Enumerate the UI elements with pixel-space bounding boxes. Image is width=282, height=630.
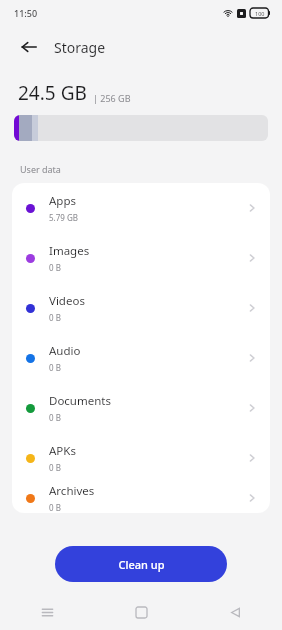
staticText: Storage (54, 38, 106, 57)
button[interactable]: Recents (30, 595, 64, 629)
staticText: 5.79 GB (49, 212, 78, 223)
staticText: 0 B (49, 262, 61, 273)
staticText: Documents (49, 393, 111, 409)
button[interactable]: Back (218, 595, 252, 629)
button[interactable]: Audio (12, 333, 270, 383)
button[interactable]: Back (14, 32, 44, 62)
staticText: Apps (49, 193, 77, 209)
staticText: User data (20, 163, 61, 175)
staticText: Clean up (118, 557, 165, 572)
button[interactable]: Archives (12, 483, 270, 513)
staticText: Images (49, 243, 90, 259)
staticText: 100 (255, 10, 265, 17)
staticText: Archives (49, 483, 95, 499)
staticText: Audio (49, 343, 81, 359)
staticText: 0 B (49, 312, 61, 323)
staticText: 24.5 GB (18, 80, 87, 106)
button[interactable]: APKs (12, 433, 270, 483)
staticText: Videos (49, 293, 85, 309)
staticText: | 256 GB (93, 92, 131, 104)
button[interactable]: Documents (12, 383, 270, 433)
button[interactable]: Home (124, 595, 158, 629)
staticText: 0 B (49, 362, 61, 373)
button[interactable]: Videos (12, 283, 270, 333)
button[interactable]: Apps (12, 183, 270, 233)
staticText: 0 B (49, 412, 61, 423)
staticText: 0 B (49, 502, 61, 513)
staticText: APKs (49, 443, 76, 459)
button[interactable]: Clean up (55, 546, 227, 582)
staticText: 11:50 (14, 7, 38, 19)
button[interactable]: Images (12, 233, 270, 283)
staticText: 0 B (49, 462, 61, 473)
